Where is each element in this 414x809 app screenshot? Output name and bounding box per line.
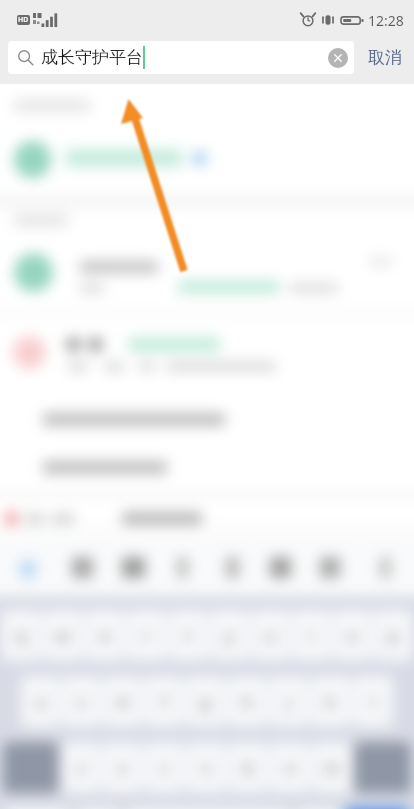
button[interactable]: Candidate bbox=[111, 552, 155, 586]
button[interactable]: h bbox=[227, 676, 267, 727]
button[interactable] bbox=[0, 320, 414, 390]
button[interactable] bbox=[0, 240, 414, 312]
button[interactable]: l bbox=[353, 676, 393, 727]
staticText: b bbox=[243, 756, 254, 779]
button[interactable]: q bbox=[1, 610, 41, 661]
button[interactable]: c bbox=[144, 742, 184, 793]
button[interactable] bbox=[0, 124, 414, 196]
button[interactable]: Candidate bbox=[210, 552, 254, 586]
button[interactable]: Clear text bbox=[328, 48, 348, 68]
button[interactable]: o bbox=[333, 610, 372, 661]
button[interactable]: . bbox=[294, 808, 341, 809]
staticText: 取消 bbox=[368, 47, 402, 68]
button[interactable]: 成长守护平台 bbox=[8, 41, 354, 74]
button[interactable] bbox=[0, 398, 414, 442]
staticText: h bbox=[242, 690, 253, 713]
staticText: y bbox=[225, 624, 234, 647]
button[interactable]: s bbox=[62, 676, 101, 727]
button[interactable]: Delete bbox=[354, 742, 411, 793]
button[interactable] bbox=[0, 500, 414, 536]
button[interactable]: z bbox=[61, 742, 100, 793]
button[interactable]: b bbox=[228, 742, 268, 793]
staticText: u bbox=[265, 624, 276, 647]
staticText: k bbox=[326, 690, 336, 713]
button[interactable]: Shift bbox=[3, 742, 59, 793]
staticText: w bbox=[56, 624, 70, 647]
button[interactable]: Candidate bbox=[258, 552, 302, 586]
staticText: q bbox=[16, 624, 27, 647]
button[interactable]: y bbox=[210, 610, 249, 661]
staticText: e bbox=[100, 624, 110, 647]
button[interactable]: Candidate bbox=[308, 552, 352, 586]
button[interactable]: v bbox=[186, 742, 226, 793]
button[interactable]: Pinyin bbox=[8, 552, 48, 586]
staticText: HD bbox=[18, 15, 29, 25]
button[interactable]: n bbox=[270, 742, 310, 793]
button[interactable]: a bbox=[21, 676, 60, 727]
button[interactable]: Search bbox=[343, 808, 411, 809]
button[interactable]: x bbox=[102, 742, 142, 793]
button[interactable]: p bbox=[374, 610, 413, 661]
button[interactable]: w bbox=[43, 610, 83, 661]
button[interactable]: k bbox=[311, 676, 351, 727]
button[interactable]: e bbox=[85, 610, 125, 661]
button[interactable]: j bbox=[269, 676, 309, 727]
staticText: d bbox=[117, 690, 128, 713]
button[interactable]: 取消 bbox=[356, 41, 414, 74]
button[interactable]: f bbox=[144, 676, 183, 727]
staticText: a bbox=[36, 690, 46, 713]
staticText: p bbox=[388, 624, 399, 647]
button[interactable]: i bbox=[292, 610, 331, 661]
staticText: 12:28 bbox=[368, 11, 404, 30]
button[interactable]: Candidate bbox=[363, 552, 407, 586]
button[interactable]: t bbox=[169, 610, 208, 661]
button[interactable] bbox=[0, 444, 414, 488]
button[interactable]: m bbox=[312, 742, 352, 793]
button[interactable]: d bbox=[103, 676, 142, 727]
button[interactable]: Candidate bbox=[60, 552, 104, 586]
staticText: m bbox=[324, 756, 340, 779]
button[interactable]: Candidate bbox=[160, 552, 204, 586]
button[interactable]: g bbox=[185, 676, 225, 727]
button[interactable]: r bbox=[127, 610, 167, 661]
staticText: g bbox=[200, 690, 211, 713]
staticText: o bbox=[347, 624, 358, 647]
staticText: 成长守护平台 bbox=[41, 47, 143, 68]
button[interactable]: u bbox=[251, 610, 290, 661]
